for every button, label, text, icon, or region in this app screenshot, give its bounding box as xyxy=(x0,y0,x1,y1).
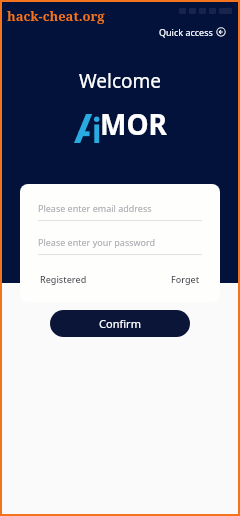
button[interactable]: Forget xyxy=(169,271,202,287)
staticText: MOR xyxy=(100,105,167,143)
button[interactable]: Please enter your password xyxy=(38,236,202,255)
staticText: hack-cheat.org xyxy=(7,7,105,25)
staticText: Quick access xyxy=(159,26,213,38)
button[interactable]: Confirm xyxy=(50,310,190,337)
button[interactable]: Quick access xyxy=(157,24,228,40)
staticText: Welcome xyxy=(79,68,162,94)
staticText: Confirm xyxy=(99,316,141,331)
button[interactable]: Please enter email address xyxy=(38,202,202,221)
button[interactable]: Registered xyxy=(38,271,89,287)
staticText: Please enter email address xyxy=(38,202,152,214)
other: Quick access xyxy=(216,27,226,37)
staticText: Please enter your password xyxy=(38,236,156,248)
